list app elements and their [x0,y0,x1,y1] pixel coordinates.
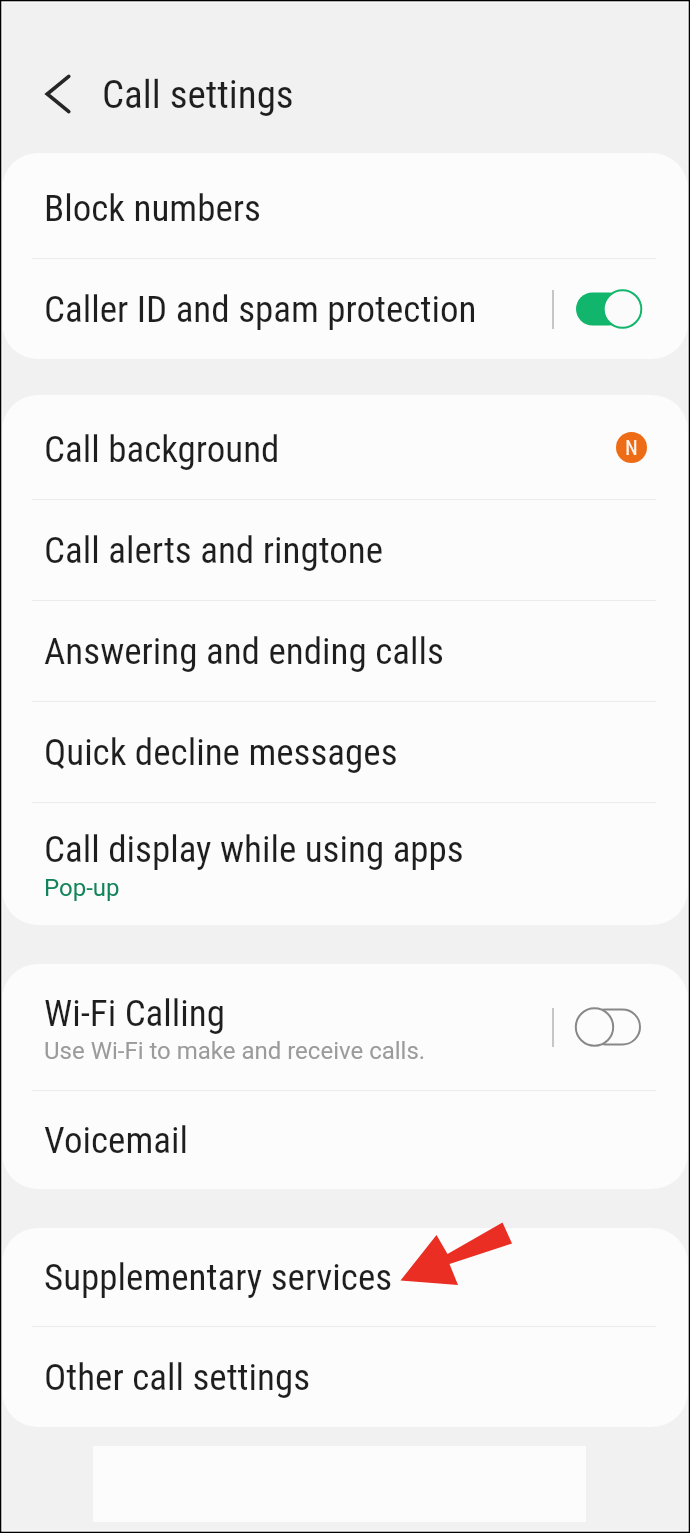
button[interactable]: Call alerts and ringtone [2,500,688,600]
button[interactable]: Block numbers [2,153,688,258]
button[interactable]: Wi-Fi Calling, off [576,1005,647,1049]
button[interactable]: Voicemail [2,1091,688,1189]
button[interactable]: Caller ID and spam protection [2,259,688,359]
button[interactable]: Call display while using apps [2,803,688,925]
button[interactable]: Answering and ending calls [2,601,688,701]
button[interactable]: Call background [2,395,688,499]
staticText: Call background [44,428,280,471]
staticText: Answering and ending calls [44,630,444,673]
staticText: Caller ID and spam protection [44,288,477,331]
staticText: Pop-up [44,874,120,902]
staticText: Call display while using apps [44,828,464,871]
staticText: Supplementary services [44,1256,393,1299]
staticText: N [625,436,638,459]
staticText: Call settings [102,72,294,118]
staticText: Voicemail [44,1119,188,1162]
button[interactable]: Navigate up [27,63,89,125]
button[interactable]: Quick decline messages [2,702,688,802]
staticText: Other call settings [44,1356,311,1399]
staticText: Wi-Fi Calling [44,992,225,1035]
staticText: Call alerts and ringtone [44,529,384,572]
other: New [616,432,647,463]
staticText: Quick decline messages [44,731,398,774]
button[interactable]: Supplementary services [2,1228,688,1326]
staticText: Block numbers [44,187,261,230]
button[interactable]: Other call settings [2,1327,688,1427]
staticText: Use Wi-Fi to make and receive calls. [44,1037,426,1065]
button[interactable]: Wi-Fi Calling [2,964,688,1090]
button[interactable]: Caller ID and spam protection, on [576,287,647,331]
